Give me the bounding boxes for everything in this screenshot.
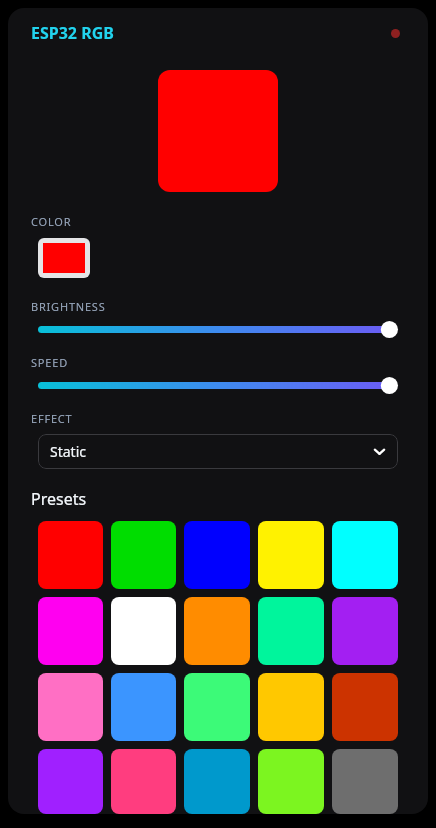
- button[interactable]: Preset colour: [38, 673, 103, 741]
- button[interactable]: Preset colour: [332, 749, 398, 814]
- staticText: EFFECT: [31, 411, 73, 426]
- button[interactable]: Static: [38, 434, 398, 469]
- button[interactable]: Preset colour: [258, 597, 324, 665]
- button[interactable]: Preset colour: [38, 597, 103, 665]
- button[interactable]: Current colour preview: [158, 70, 278, 192]
- button[interactable]: Pick colour: [38, 238, 90, 278]
- staticText: BRIGHTNESS: [31, 299, 106, 314]
- button[interactable]: Preset colour: [111, 673, 176, 741]
- staticText: COLOR: [31, 214, 72, 229]
- staticText: SPEED: [31, 355, 68, 370]
- other: Connection status indicator: [391, 29, 400, 38]
- button[interactable]: Preset colour: [258, 749, 324, 814]
- button[interactable]: Preset colour: [332, 521, 398, 589]
- button[interactable]: Preset colour: [332, 597, 398, 665]
- button[interactable]: Preset colour: [184, 597, 250, 665]
- button[interactable]: Preset colour: [258, 673, 324, 741]
- button[interactable]: Preset colour: [38, 521, 103, 589]
- button[interactable]: Preset colour: [184, 673, 250, 741]
- staticText: Presets: [31, 488, 87, 510]
- button[interactable]: Preset colour: [184, 521, 250, 589]
- button[interactable]: Brightness slider: [38, 320, 398, 339]
- button[interactable]: Preset colour: [332, 673, 398, 741]
- staticText: ESP32 RGB: [31, 22, 114, 44]
- button[interactable]: Preset colour: [258, 521, 324, 589]
- button[interactable]: Preset colour: [184, 749, 250, 814]
- button[interactable]: ESP32 RGB: [31, 22, 114, 44]
- button[interactable]: Preset colour: [38, 749, 103, 814]
- staticText: Static: [50, 442, 86, 461]
- button[interactable]: Preset colour: [111, 521, 176, 589]
- button[interactable]: Preset colour: [111, 749, 176, 814]
- button[interactable]: Preset colour: [111, 597, 176, 665]
- button[interactable]: Speed slider: [38, 376, 398, 395]
